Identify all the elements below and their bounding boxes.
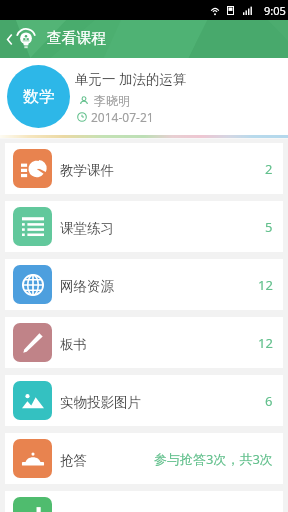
staticText: 抢答 <box>60 452 87 469</box>
staticText: 2014-07-21 <box>91 109 154 125</box>
button[interactable]: 实物投影图片 <box>5 375 283 426</box>
staticText: 板书 <box>60 336 87 353</box>
staticText: 数学 <box>23 87 55 107</box>
staticText: 网络资源 <box>60 278 114 295</box>
staticText: 9:05 <box>264 3 286 18</box>
staticText: 李晓明 <box>94 93 130 108</box>
button[interactable]: 板书 <box>5 317 283 368</box>
button[interactable]: 课堂练习 <box>5 201 283 252</box>
button[interactable]: 抢答 <box>5 433 283 484</box>
button[interactable]: 网络资源 <box>5 259 283 310</box>
staticText: 教学课件 <box>60 162 114 179</box>
staticText: 单元一 加法的运算 <box>75 70 187 88</box>
button[interactable] <box>5 491 283 512</box>
staticText: 2 <box>265 160 273 178</box>
staticText: 6 <box>265 392 273 410</box>
staticText: 12 <box>258 276 273 294</box>
staticText: 5 <box>265 218 273 236</box>
button[interactable]: Back <box>0 20 41 58</box>
staticText: 课堂练习 <box>60 220 114 237</box>
button[interactable]: 教学课件 <box>5 143 283 194</box>
staticText: 实物投影图片 <box>60 394 141 411</box>
staticText: 12 <box>258 334 273 352</box>
staticText: 查看课程 <box>47 29 107 48</box>
staticText: 参与抢答3次，共3次 <box>154 450 273 468</box>
